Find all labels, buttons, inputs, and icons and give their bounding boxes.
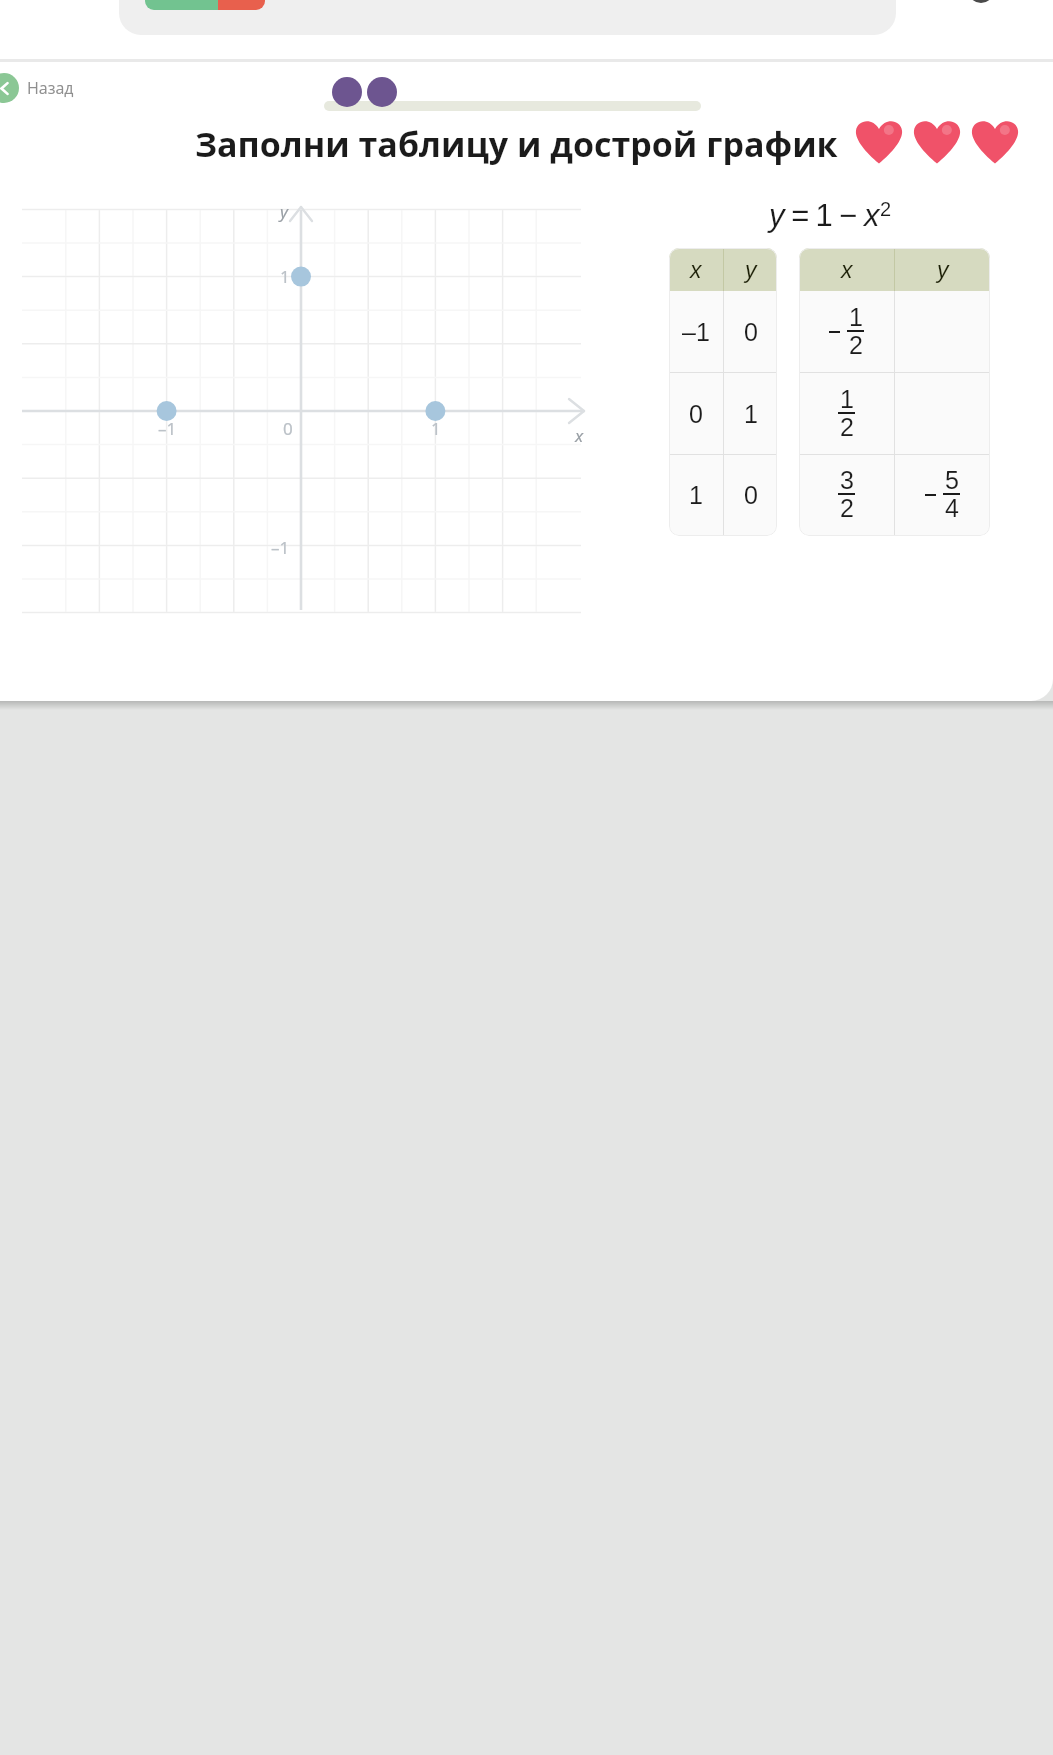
staticText: 3 bbox=[840, 466, 854, 494]
staticText: x bbox=[575, 424, 584, 447]
staticText: 0 bbox=[744, 318, 758, 346]
staticText: x bbox=[690, 257, 702, 283]
staticText: 1 bbox=[431, 417, 441, 440]
staticText: 0 bbox=[689, 400, 703, 428]
staticText: y bbox=[280, 200, 288, 223]
staticText: 4 bbox=[945, 494, 959, 522]
staticText: 2 bbox=[849, 331, 863, 359]
staticText: 2 bbox=[880, 198, 892, 220]
staticText: 1 bbox=[744, 400, 758, 428]
staticText: 1 bbox=[849, 303, 863, 331]
staticText: = 1 − bbox=[785, 198, 864, 233]
staticText: –1 bbox=[271, 536, 290, 559]
button[interactable]: Координатная плоскость bbox=[22, 196, 592, 616]
staticText: –1 bbox=[682, 318, 710, 346]
staticText: 1 bbox=[689, 481, 703, 509]
staticText: y bbox=[745, 257, 757, 283]
staticText: 0 bbox=[283, 417, 293, 440]
staticText: 5 bbox=[945, 466, 959, 494]
button[interactable]: Меню bbox=[968, 0, 994, 3]
staticText: Назад bbox=[27, 77, 74, 99]
staticText: y bbox=[937, 257, 949, 283]
staticText: x bbox=[841, 257, 853, 283]
staticText: y bbox=[769, 198, 785, 233]
button[interactable]: Жизни: 3 bbox=[855, 119, 1019, 164]
staticText: x bbox=[864, 198, 880, 233]
button[interactable]: Выполненные шаги bbox=[332, 77, 397, 107]
button[interactable]: Введите значение y bbox=[895, 455, 990, 535]
staticText: 2 bbox=[840, 413, 854, 441]
staticText: 1 bbox=[280, 265, 290, 288]
staticText: –1 bbox=[158, 417, 177, 440]
staticText: 0 bbox=[744, 481, 758, 509]
staticText: Заполни таблицу и дострой график bbox=[195, 121, 838, 167]
button[interactable]: Прогресс урока bbox=[324, 101, 701, 111]
staticText: 1 bbox=[840, 385, 854, 413]
staticText: 2 bbox=[840, 494, 854, 522]
button[interactable]: Назад bbox=[0, 67, 76, 109]
